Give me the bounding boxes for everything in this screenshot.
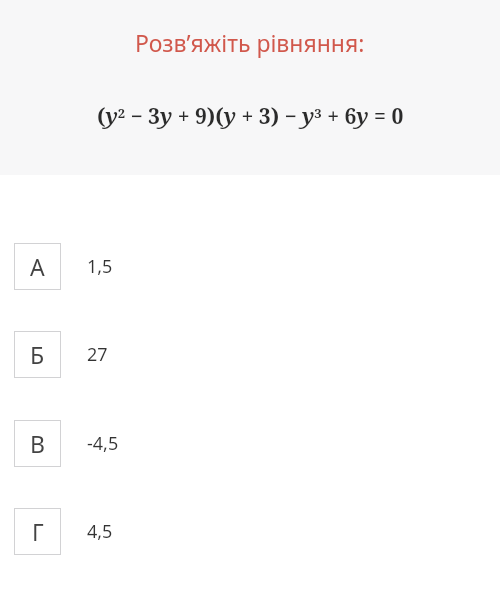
button[interactable]: В — [0, 399, 500, 487]
staticText: Розв’яжіть рівняння: — [135, 27, 365, 58]
staticText: 1,5 — [87, 254, 113, 279]
button[interactable]: А — [0, 222, 500, 310]
staticText: А — [30, 251, 45, 282]
staticText: 4,5 — [87, 519, 113, 544]
staticText: Г — [32, 516, 44, 547]
button[interactable]: Б — [0, 310, 500, 399]
staticText: -4,5 — [87, 431, 119, 456]
staticText: (y2 − 3y + 9)(y + 3) − y3 + 6y = 0 — [97, 102, 404, 131]
staticText: В — [30, 428, 45, 459]
staticText: Б — [30, 339, 45, 370]
staticText: 27 — [87, 342, 108, 367]
button[interactable]: Г — [0, 487, 500, 575]
